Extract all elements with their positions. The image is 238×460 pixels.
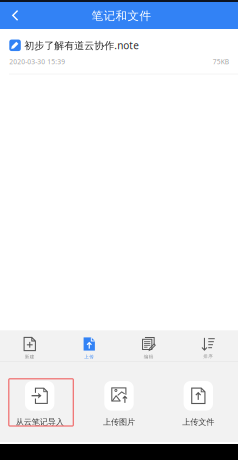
button[interactable]: 新建: [0, 330, 59, 362]
button[interactable]: 上传文件: [159, 381, 238, 427]
staticText: 编辑: [144, 354, 154, 360]
staticText: 上传: [84, 354, 94, 359]
button[interactable]: 排序: [178, 330, 238, 361]
staticText: 初步了解有道云协作.note: [24, 38, 139, 52]
staticText: 排序: [203, 353, 213, 359]
button[interactable]: 上传图片: [79, 381, 159, 427]
staticText: 从云笔记导入: [16, 417, 64, 427]
staticText: 笔记和文件: [91, 9, 151, 23]
staticText: 新建: [25, 354, 35, 359]
staticText: 75KB: [213, 57, 229, 66]
staticText: 上传图片: [103, 417, 135, 427]
button[interactable]: 编辑: [119, 330, 178, 362]
button[interactable]: 从云笔记导入: [0, 381, 79, 427]
staticText: 2020-03-30 15:39: [9, 57, 65, 66]
button[interactable]: Back: [0, 3, 29, 28]
button[interactable]: 初步了解有道云协作.note: [0, 29, 238, 74]
button[interactable]: 上传: [59, 330, 119, 362]
staticText: 上传文件: [182, 417, 214, 427]
